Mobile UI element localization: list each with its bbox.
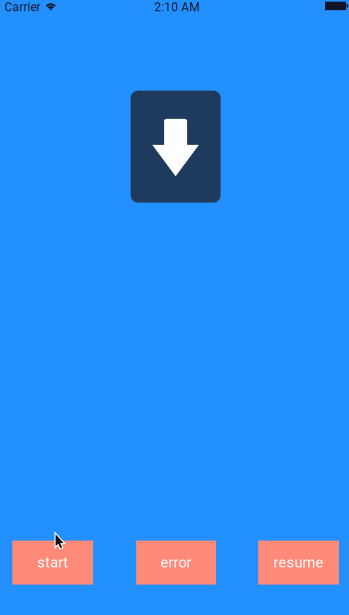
staticText: error: [161, 554, 192, 571]
button[interactable]: resume: [258, 541, 339, 585]
staticText: start: [37, 554, 68, 571]
staticText: 2:10 AM: [154, 0, 199, 14]
staticText: resume: [274, 554, 324, 571]
staticText: Carrier: [4, 0, 40, 14]
button[interactable]: error: [136, 541, 216, 585]
button[interactable]: start: [12, 541, 93, 585]
